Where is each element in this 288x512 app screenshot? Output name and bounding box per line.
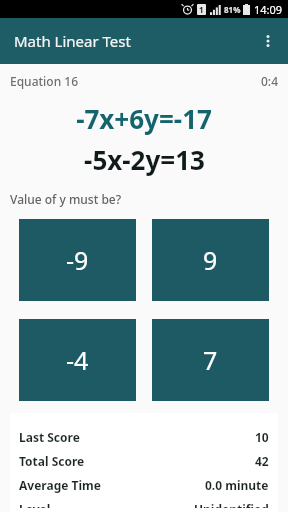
button[interactable]: More options xyxy=(248,21,288,61)
staticText: 7 xyxy=(203,343,218,377)
staticText: 1 xyxy=(199,4,204,15)
staticText: 81% xyxy=(224,4,241,15)
staticText: Level xyxy=(19,501,51,508)
staticText: -7x+6y=-17 xyxy=(76,101,212,136)
staticText: -9 xyxy=(66,243,89,277)
staticText: -4 xyxy=(66,343,89,377)
button[interactable]: -4 xyxy=(19,319,136,401)
staticText: 14:09 xyxy=(254,2,283,17)
staticText: 10 xyxy=(255,429,269,445)
button[interactable]: -9 xyxy=(19,219,136,301)
staticText: 42 xyxy=(255,453,269,469)
staticText: Math Linear Test xyxy=(14,31,131,51)
staticText: 0.0 minute xyxy=(205,477,269,493)
staticText: -5x-2y=13 xyxy=(84,142,205,177)
staticText: Total Score xyxy=(19,453,85,469)
staticText: Equation 16 xyxy=(10,73,79,89)
button[interactable]: 9 xyxy=(152,219,269,301)
staticText: Value of y must be? xyxy=(10,191,122,207)
staticText: Last Score xyxy=(19,429,80,445)
staticText: 0:4 xyxy=(261,73,278,89)
staticText: Unidentified xyxy=(194,501,269,508)
staticText: 9 xyxy=(203,243,218,277)
button[interactable]: 7 xyxy=(152,319,269,401)
staticText: Average Time xyxy=(19,477,101,493)
